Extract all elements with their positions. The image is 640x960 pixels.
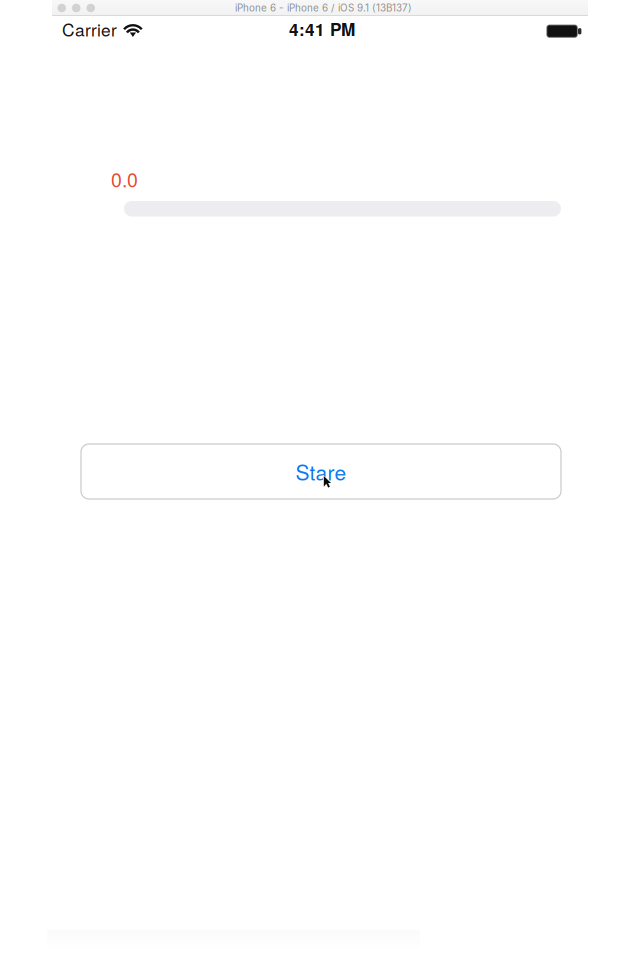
button[interactable]: Stare bbox=[81, 444, 561, 499]
staticText: Carrier bbox=[62, 17, 117, 41]
staticText: 4:41 PM bbox=[289, 17, 355, 41]
staticText: Stare bbox=[295, 456, 346, 486]
staticText: 0.0 bbox=[111, 165, 138, 193]
staticText: iPhone 6 - iPhone 6 / iOS 9.1 (13B137) bbox=[235, 2, 412, 14]
